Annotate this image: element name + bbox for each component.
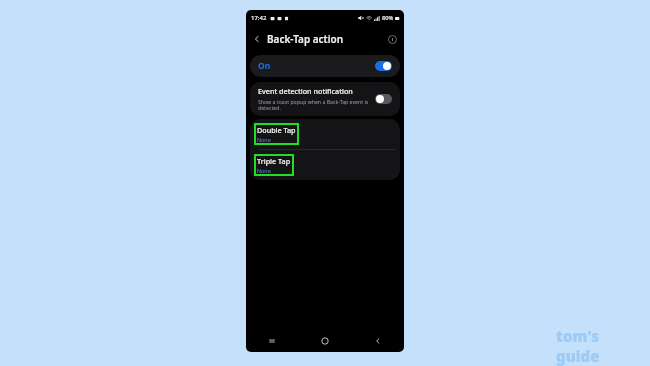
button[interactable]: Recents (246, 330, 298, 352)
button[interactable]: Home (298, 330, 351, 352)
button[interactable]: Toggle on (375, 61, 392, 71)
button[interactable]: Event detection notification (250, 82, 400, 116)
staticText: 80% (382, 14, 394, 22)
button[interactable]: Back (351, 330, 404, 352)
button[interactable]: Information (384, 31, 400, 47)
button[interactable]: On (250, 55, 400, 77)
staticText: guide (556, 346, 600, 366)
staticText: tom's (556, 326, 599, 346)
staticText: Double Tap (257, 125, 296, 135)
button[interactable]: Toggle off (375, 94, 392, 104)
staticText: Show a toast popup when a Back-Tap event… (258, 98, 371, 112)
button[interactable]: Triple Tap (250, 150, 400, 180)
staticText: Triple Tap (257, 156, 291, 166)
staticText: Back-Tap action (267, 32, 344, 46)
button[interactable]: Double Tap (250, 119, 400, 149)
staticText: None (257, 136, 271, 143)
staticText: 17:42 (251, 14, 267, 22)
staticText: On (258, 60, 271, 72)
staticText: Event detection notification (258, 86, 353, 96)
staticText: None (257, 167, 271, 174)
button[interactable]: Back (249, 31, 265, 47)
